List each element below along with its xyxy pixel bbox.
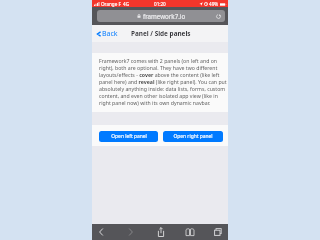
button[interactable]: Forward bbox=[122, 224, 140, 240]
staticText: Orange F bbox=[101, 1, 121, 7]
staticText: content, and even other isolated app vie… bbox=[99, 92, 218, 99]
staticText: 01:20 bbox=[154, 1, 166, 7]
staticText: 49% bbox=[209, 1, 219, 7]
button[interactable]: Open right panel bbox=[163, 131, 223, 142]
staticText: Open left panel bbox=[111, 133, 147, 140]
button[interactable]: Tabs bbox=[209, 224, 227, 240]
staticText: panel here) and reveal (like right panel… bbox=[99, 78, 227, 85]
staticText: 4G bbox=[123, 1, 129, 7]
button[interactable]: Back bbox=[92, 224, 110, 240]
staticText: layouts/effects - cover above the conten… bbox=[99, 71, 220, 78]
staticText: absolutely anything inside: data lists, … bbox=[99, 85, 226, 92]
staticText: Back bbox=[102, 29, 118, 39]
staticText: right panel now) with its own dynamic na… bbox=[99, 99, 211, 106]
button[interactable]: Share bbox=[152, 224, 170, 240]
staticText: Framework7 comes with 2 panels (on left … bbox=[99, 57, 218, 64]
other: Reload bbox=[215, 13, 222, 20]
staticText: right), both are optional. They have two… bbox=[99, 64, 218, 71]
button[interactable]: Back bbox=[96, 29, 118, 39]
staticText: Panel / Side panels bbox=[131, 29, 191, 38]
staticText: framework7.io bbox=[143, 12, 186, 20]
button[interactable]: Open left panel bbox=[99, 131, 158, 142]
button[interactable]: framework7.io bbox=[97, 10, 225, 22]
button[interactable]: Bookmarks bbox=[181, 224, 199, 240]
staticText: Open right panel bbox=[173, 133, 213, 140]
